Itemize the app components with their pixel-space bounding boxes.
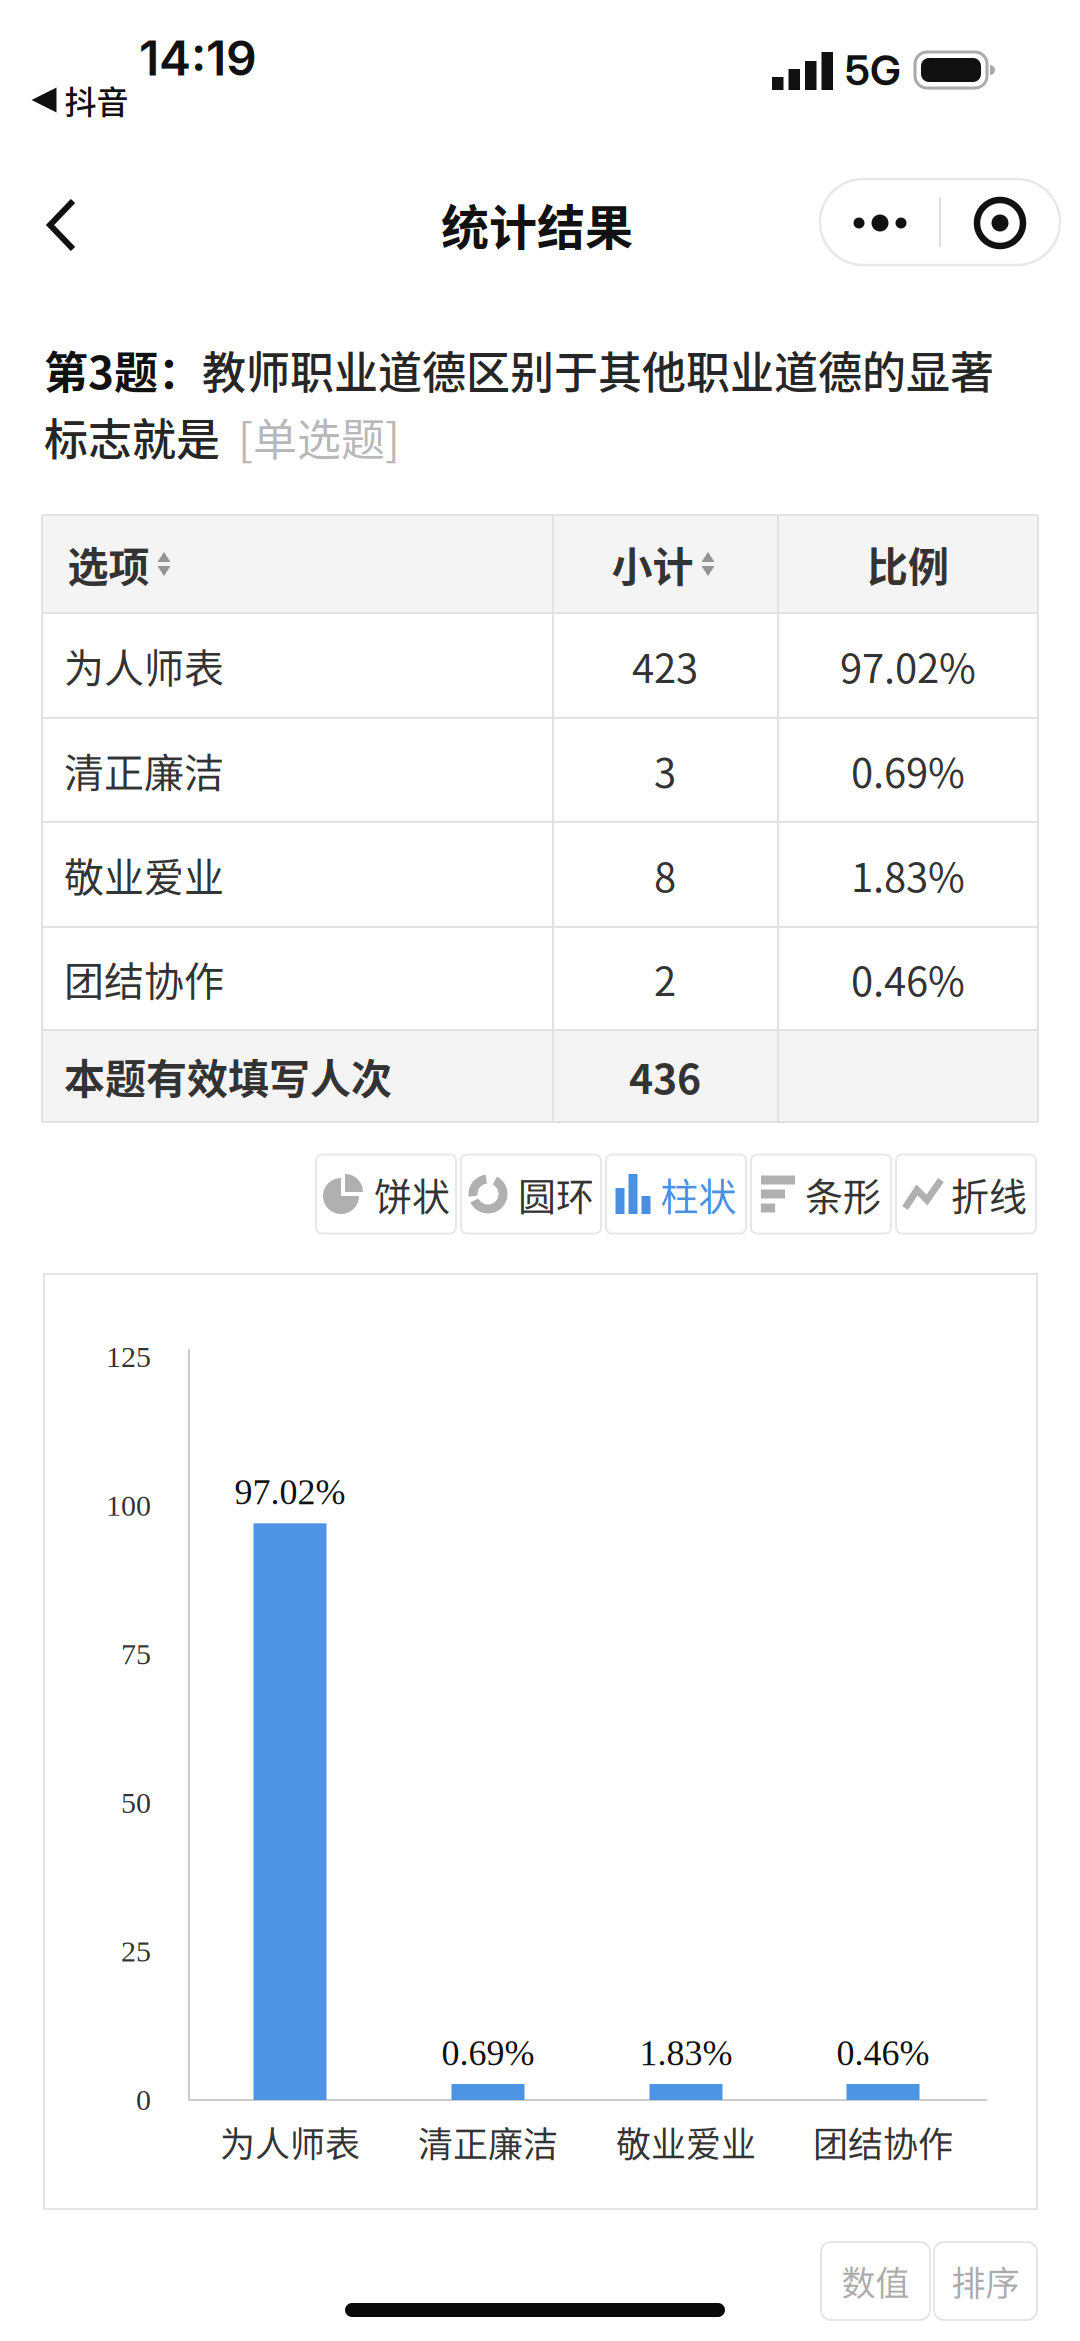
staticText: 1.83% [639,2033,732,2073]
staticText: 排序 [951,2256,1019,2306]
staticText: 423 [632,636,698,694]
staticText: 3 [654,741,676,799]
staticText: 0.69% [441,2033,534,2073]
staticText: 0.46% [836,2033,929,2073]
staticText: 敬业爱业 [616,2117,756,2167]
button[interactable]: 条形 [751,1154,891,1233]
staticText: 97.02% [840,636,976,694]
staticText: 数值 [841,2256,909,2306]
button[interactable]: 圆环 [461,1154,601,1233]
button[interactable]: More [820,180,940,266]
button[interactable]: Back [32,185,92,265]
staticText: 团结协作 [64,949,224,1007]
staticText: 0.46% [851,949,965,1007]
staticText: 柱状 [660,1166,736,1221]
staticText: 第3题： [44,338,202,402]
staticText: 圆环 [518,1166,594,1221]
button[interactable]: 折线 [896,1154,1036,1233]
staticText: 1.83% [851,845,965,903]
staticText: 5G [845,45,901,95]
staticText: [单选题] [238,405,400,469]
staticText: 比例 [867,534,949,594]
staticText: 敬业爱业 [64,845,224,903]
button[interactable]: 排序 [934,2242,1037,2320]
staticText: 50 [121,1786,151,1819]
staticText: 本题有效填写人次 [64,1046,392,1106]
staticText: 125 [106,1340,151,1374]
staticText: 清正廉洁 [64,741,224,799]
staticText: 97.02% [234,1472,345,1512]
staticText: 436 [629,1046,701,1106]
button[interactable]: 柱状 [606,1154,746,1233]
staticText: 75 [121,1638,151,1671]
staticText: 0 [136,2083,151,2117]
staticText: 100 [106,1489,151,1522]
staticText: 25 [121,1935,151,1968]
staticText: 团结协作 [813,2117,953,2167]
button[interactable]: Close [950,180,1050,266]
staticText: 统计结果 [441,189,633,259]
button[interactable]: 返回抖音 [31,77,128,123]
button[interactable]: 选项 [67,534,170,594]
staticText: 为人师表 [64,636,224,694]
button[interactable]: 小计 [611,534,714,594]
staticText: 小计 [611,534,693,594]
staticText: 14:19 [139,29,257,87]
staticText: 饼状 [374,1166,450,1221]
staticText: 2 [654,949,676,1007]
staticText: 为人师表 [220,2117,360,2167]
staticText: 选项 [67,534,149,594]
staticText: 标志就是 [44,405,220,469]
staticText: 条形 [805,1166,881,1221]
staticText: 折线 [951,1166,1027,1221]
button[interactable]: 数值 [821,2242,930,2320]
staticText: 抖音 [64,77,128,123]
staticText: 8 [654,845,676,903]
staticText: 教师职业道德区别于其他职业道德的显著 [202,338,994,402]
button[interactable]: 饼状 [316,1154,456,1233]
staticText: 0.69% [851,741,965,799]
staticText: 清正廉洁 [418,2117,558,2167]
